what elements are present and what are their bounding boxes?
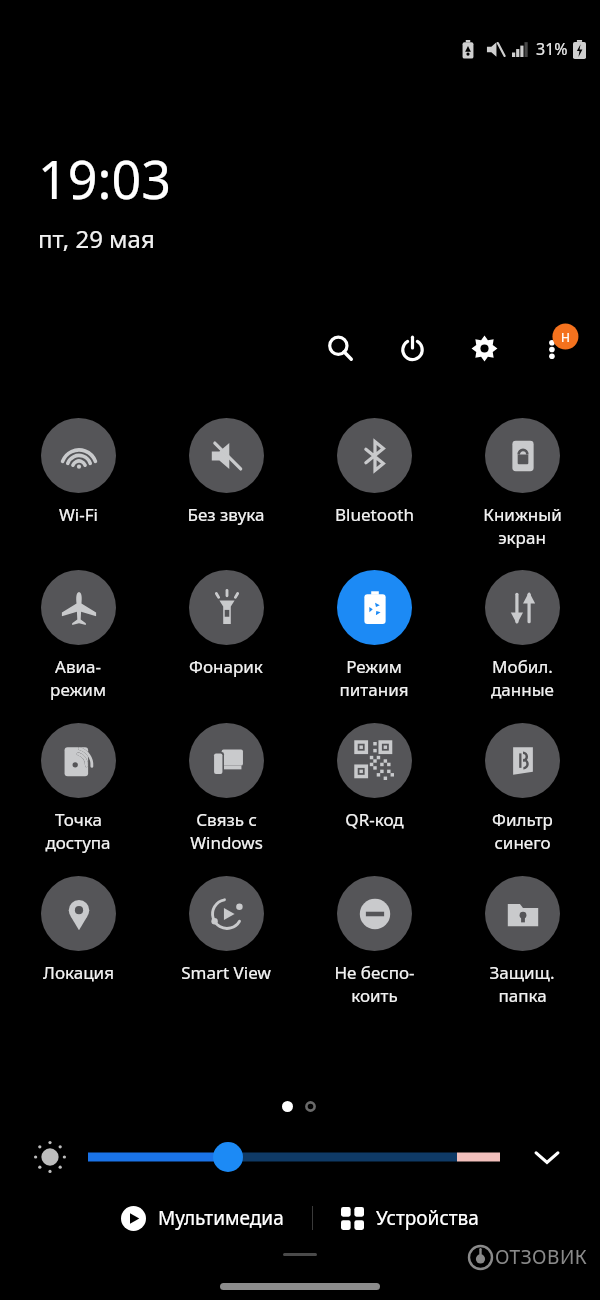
staticText: Режим: [346, 655, 402, 678]
staticText: коить: [351, 984, 398, 1007]
staticText: Локация: [43, 961, 114, 984]
staticText: питания: [339, 678, 409, 701]
button[interactable]: More options: [528, 322, 580, 374]
button[interactable]: Связь с: [156, 723, 296, 854]
button[interactable]: Устройства: [335, 1199, 485, 1237]
button[interactable]: Фонарик: [156, 570, 296, 678]
button[interactable]: QR-код: [304, 723, 444, 831]
staticText: Точка: [55, 808, 102, 831]
button[interactable]: Локация: [8, 876, 148, 984]
button[interactable]: Авиа-: [8, 570, 148, 701]
staticText: ОТЗОВИК: [495, 1244, 588, 1270]
button[interactable]: Точка: [8, 723, 148, 854]
button[interactable]: Brightness slider: [0, 1133, 600, 1181]
staticText: Windows: [190, 831, 263, 854]
button[interactable]: Auto brightness: [32, 1139, 68, 1175]
button[interactable]: Smart View: [156, 876, 296, 984]
staticText: Защищ.: [489, 961, 555, 984]
button[interactable]: Защищ.: [452, 876, 592, 1007]
staticText: данные: [491, 678, 554, 701]
staticText: Авиа-: [55, 655, 101, 678]
staticText: Устройства: [376, 1205, 479, 1231]
staticText: Wi-Fi: [59, 503, 98, 526]
staticText: режим: [50, 678, 106, 701]
staticText: Bluetooth: [335, 503, 414, 526]
button[interactable]: Без звука: [156, 418, 296, 526]
button[interactable]: Expand: [530, 1140, 564, 1174]
button[interactable]: Power off: [390, 326, 434, 370]
staticText: Smart View: [181, 961, 271, 984]
button[interactable]: Search: [318, 326, 362, 370]
staticText: экран: [498, 526, 546, 549]
staticText: QR-код: [345, 808, 404, 831]
staticText: Без звука: [187, 503, 265, 526]
staticText: синего: [494, 831, 551, 854]
staticText: H: [561, 329, 570, 345]
staticText: Не беспо-: [334, 961, 415, 984]
staticText: пт, 29 мая: [38, 222, 155, 255]
button[interactable]: Книжный: [452, 418, 592, 549]
button[interactable]: Bluetooth: [304, 418, 444, 526]
button[interactable]: Мобил.: [452, 570, 592, 701]
button[interactable]: Мультимедиа: [115, 1199, 290, 1237]
staticText: Книжный: [483, 503, 562, 526]
button[interactable]: Wi-Fi: [8, 418, 148, 526]
staticText: доступа: [45, 831, 111, 854]
staticText: 31%: [536, 38, 568, 60]
button[interactable]: Режим: [304, 570, 444, 701]
staticText: папка: [498, 984, 547, 1007]
staticText: Мультимедиа: [158, 1205, 284, 1231]
staticText: Фонарик: [189, 655, 263, 678]
staticText: Связь с: [196, 808, 257, 831]
staticText: Мобил.: [492, 655, 553, 678]
button[interactable]: Фильтр: [452, 723, 592, 854]
staticText: 19:03: [38, 143, 171, 214]
button[interactable]: Settings: [462, 326, 506, 370]
button[interactable]: Не беспо-: [304, 876, 444, 1007]
staticText: Фильтр: [492, 808, 553, 831]
